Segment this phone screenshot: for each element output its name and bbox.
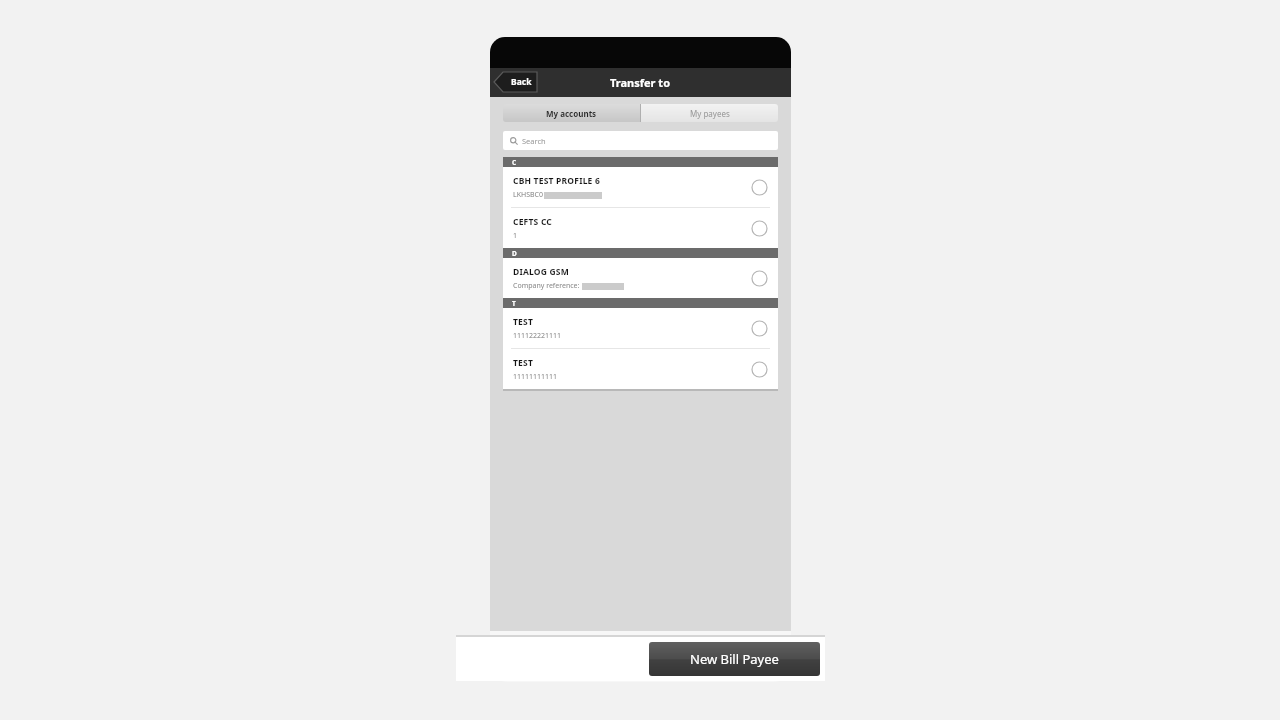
staticText: My accounts bbox=[546, 108, 597, 119]
staticText: CEFTS CC bbox=[513, 216, 553, 228]
staticText: New Bill Payee bbox=[690, 650, 779, 668]
staticText: My payees bbox=[690, 108, 730, 119]
staticText: DIALOG GSM bbox=[513, 266, 569, 278]
staticText: Transfer to bbox=[610, 75, 671, 90]
button[interactable]: DIALOG GSM bbox=[503, 258, 778, 298]
staticText: TEST bbox=[513, 357, 534, 369]
staticText: Search bbox=[522, 136, 546, 146]
staticText: C bbox=[512, 158, 517, 167]
button[interactable]: Back bbox=[494, 71, 540, 93]
button[interactable]: Search bbox=[503, 131, 778, 150]
staticText: D bbox=[512, 249, 517, 258]
staticText: CBH TEST PROFILE 6 bbox=[513, 175, 601, 187]
button[interactable]: CEFTS CC bbox=[503, 208, 778, 248]
button[interactable]: CBH TEST PROFILE 6 bbox=[503, 167, 778, 207]
button[interactable]: My accounts bbox=[503, 104, 640, 122]
staticText: 11111111111 bbox=[513, 372, 558, 382]
staticText: Back bbox=[511, 76, 532, 88]
staticText: TEST bbox=[513, 316, 534, 328]
button[interactable]: TEST bbox=[503, 308, 778, 348]
button[interactable]: My payees bbox=[641, 104, 778, 122]
button[interactable]: New Bill Payee bbox=[649, 642, 820, 676]
staticText: 111122221111 bbox=[513, 331, 562, 341]
staticText: T bbox=[512, 299, 516, 308]
button[interactable]: TEST bbox=[503, 349, 778, 389]
staticText: Company reference: bbox=[513, 281, 582, 291]
staticText: 1 bbox=[513, 231, 518, 241]
staticText: LKHSBC0 bbox=[513, 190, 544, 200]
